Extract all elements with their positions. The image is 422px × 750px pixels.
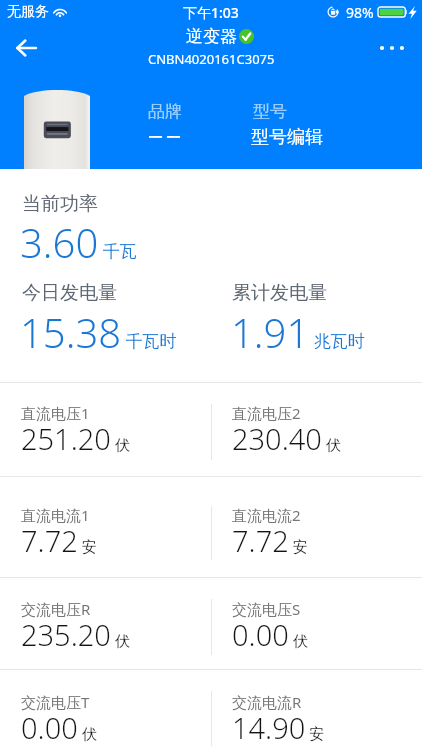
staticText: 当前功率 bbox=[22, 192, 98, 216]
button[interactable]: 直流电压2 bbox=[212, 383, 422, 476]
staticText: 98% bbox=[346, 3, 374, 22]
staticText: 3.60 千瓦 bbox=[20, 215, 137, 269]
staticText: 型号编辑 bbox=[251, 126, 323, 149]
staticText: 交流电压R bbox=[21, 599, 91, 619]
staticText: 交流电压S bbox=[232, 599, 301, 619]
staticText: 230.40 伏 bbox=[232, 419, 341, 458]
staticText: 235.20 伏 bbox=[21, 615, 130, 654]
staticText: 交流电压T bbox=[21, 692, 90, 712]
button[interactable]: 交流电压S bbox=[212, 578, 422, 669]
button[interactable]: 直流电流2 bbox=[212, 477, 422, 577]
staticText: 直流电压1 bbox=[21, 403, 90, 423]
button[interactable]: 交流电压T bbox=[0, 670, 211, 750]
button[interactable]: 直流电流1 bbox=[0, 477, 211, 577]
button[interactable]: More options bbox=[372, 28, 412, 68]
staticText: 今日发电量 bbox=[22, 281, 117, 305]
staticText: 累计发电量 bbox=[232, 281, 327, 305]
staticText: 15.38 千瓦时 bbox=[20, 305, 177, 359]
staticText: 1.91 兆瓦时 bbox=[231, 305, 365, 359]
staticText: 型号 bbox=[253, 101, 287, 122]
staticText: CNBN4020161C3075 bbox=[148, 50, 275, 68]
button[interactable]: 交流电流R bbox=[212, 670, 422, 750]
staticText: 14.90 安 bbox=[232, 708, 325, 747]
button[interactable]: 交流电压R bbox=[0, 578, 211, 669]
staticText: 下午1:03 bbox=[183, 3, 239, 22]
staticText: 直流电流1 bbox=[21, 505, 90, 525]
staticText: 逆变器 bbox=[186, 26, 237, 47]
staticText: 交流电流R bbox=[232, 692, 302, 712]
staticText: 直流电压2 bbox=[232, 403, 301, 423]
staticText: 直流电流2 bbox=[232, 505, 301, 525]
staticText: 0.00 伏 bbox=[232, 615, 308, 654]
staticText: 0.00 伏 bbox=[21, 708, 97, 747]
button[interactable]: 直流电压1 bbox=[0, 383, 211, 476]
staticText: 7.72 安 bbox=[232, 521, 308, 560]
staticText: 7.72 安 bbox=[21, 521, 97, 560]
staticText: 品牌 bbox=[148, 101, 182, 122]
staticText: 251.20 伏 bbox=[21, 419, 130, 458]
button[interactable]: Back bbox=[6, 28, 46, 68]
staticText: 无服务 bbox=[7, 3, 49, 21]
